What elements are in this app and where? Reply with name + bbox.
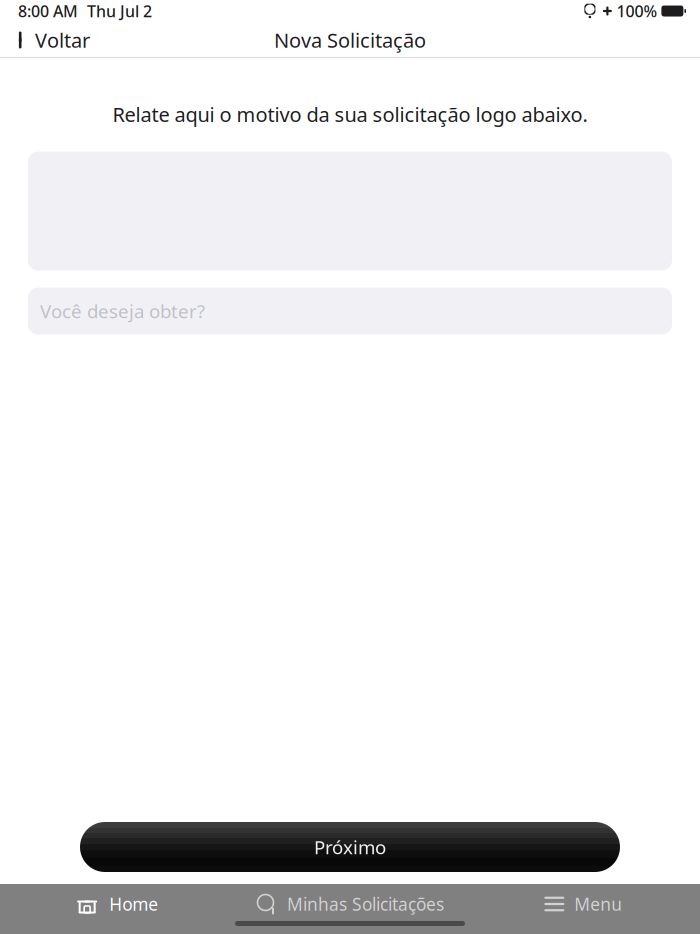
staticText: 100% — [616, 0, 657, 22]
staticText: Relate aqui o motivo da sua solicitação … — [112, 101, 587, 128]
staticText: Você deseja obter? — [40, 299, 205, 323]
staticText: Minhas Solicitações — [287, 892, 444, 915]
staticText: Home — [109, 892, 158, 915]
staticText: Nova Solicitação — [274, 27, 426, 53]
staticText: Voltar — [35, 27, 90, 53]
button[interactable]: Você deseja obter? — [28, 288, 672, 335]
staticText: Thu Jul 2 — [87, 0, 152, 22]
staticText: 8:00 AM — [18, 0, 78, 22]
button[interactable]: Menu — [467, 879, 700, 929]
staticText: Próximo — [314, 835, 386, 859]
button[interactable]: Minhas Solicitações — [233, 879, 467, 929]
button[interactable]: Home — [0, 879, 233, 929]
staticText: Menu — [574, 892, 622, 915]
button[interactable]: Próximo — [80, 822, 620, 872]
button[interactable]: Voltar — [3, 22, 102, 58]
